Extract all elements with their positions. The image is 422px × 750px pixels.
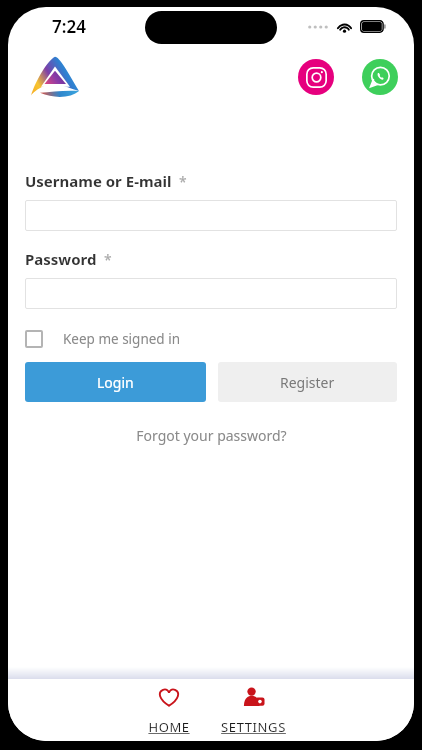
staticText: SETTINGS	[221, 718, 286, 736]
button[interactable]: Text input field	[25, 200, 397, 231]
button[interactable]: Instagram	[298, 59, 334, 95]
button[interactable]: Login	[25, 362, 206, 402]
staticText: 7:24	[52, 15, 86, 38]
staticText: Login	[97, 373, 134, 392]
button[interactable]: Keep me signed in	[25, 328, 188, 350]
staticText: *	[104, 250, 112, 269]
staticText: Register	[280, 373, 335, 392]
button[interactable]: Settings	[211, 679, 295, 736]
button[interactable]: Forgot your password?	[130, 420, 293, 451]
staticText: Password	[25, 249, 97, 269]
staticText: HOME	[148, 718, 190, 736]
button[interactable]: Text input field	[25, 278, 397, 309]
button[interactable]: Register	[218, 362, 397, 402]
button[interactable]: WhatsApp	[362, 59, 398, 95]
button[interactable]: App logo, home	[28, 53, 82, 101]
staticText: Keep me signed in	[63, 330, 180, 348]
button[interactable]: Home	[127, 679, 211, 736]
staticText: Forgot your password?	[136, 426, 287, 445]
staticText: *	[179, 172, 187, 191]
staticText: Username or E-mail	[25, 171, 172, 191]
